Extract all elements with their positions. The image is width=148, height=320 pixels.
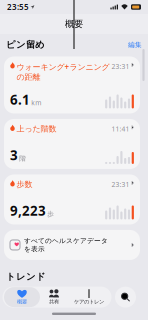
button[interactable]: 共有 [40, 287, 68, 307]
staticText: 上った階数 [17, 124, 57, 134]
staticText: 23:55 [7, 2, 29, 12]
button[interactable]: 概要 [4, 287, 40, 307]
button[interactable]: 検索 [115, 287, 136, 308]
staticText: 共有 [49, 298, 59, 305]
staticText: 23:31 [111, 62, 129, 71]
button[interactable]: ウォーキング+ランニング の距離 [4, 56, 140, 113]
staticText: km [31, 98, 41, 107]
button[interactable]: 編集 [128, 41, 142, 49]
staticText: 11:41 [111, 124, 129, 133]
staticText: すべてのヘルスケアデータ を表示 [24, 237, 108, 253]
staticText: 編集 [128, 41, 142, 49]
staticText: 23:31 [111, 180, 129, 189]
button[interactable]: すべてのヘルスケアデータ を表示 [4, 230, 140, 260]
staticText: ケアのトレン [74, 298, 104, 305]
button[interactable]: 歩数 [4, 174, 140, 224]
staticText: 階 [19, 154, 26, 163]
staticText: 3 [10, 146, 18, 164]
button[interactable]: 上った階数 [4, 119, 140, 169]
staticText: 歩 [47, 210, 54, 218]
staticText: トレンド [6, 271, 46, 282]
staticText: 概要 [65, 18, 83, 30]
staticText: 9,223 [10, 202, 46, 219]
staticText: 6.1 [10, 91, 30, 108]
staticText: ウォーキング+ランニング の距離 [17, 61, 110, 82]
staticText: 概要 [17, 298, 27, 305]
button[interactable]: ケアのトレン [68, 287, 110, 307]
staticText: 歩数 [17, 179, 33, 189]
staticText: ピン留め [6, 39, 45, 50]
